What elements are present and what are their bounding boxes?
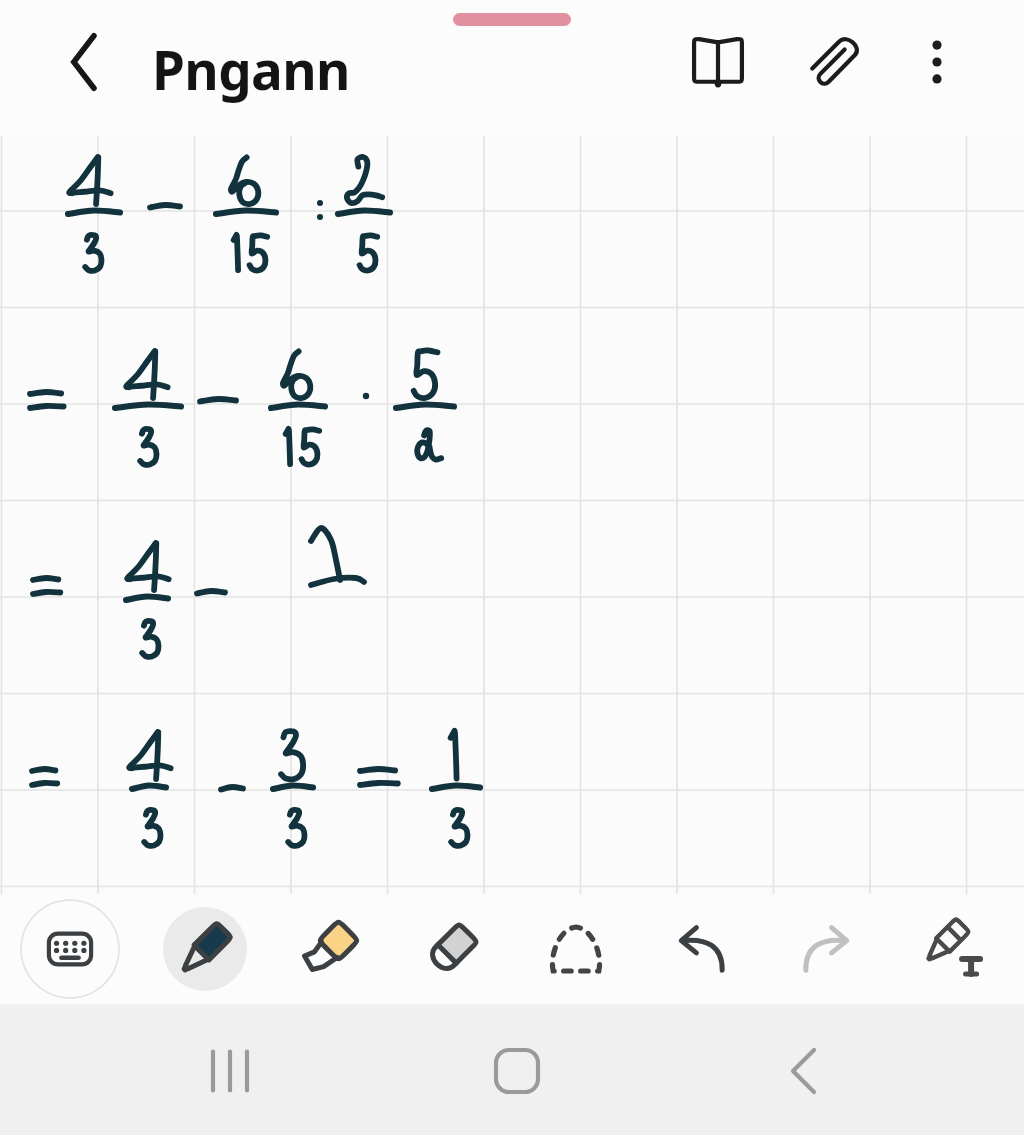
button[interactable]: Eraser	[410, 907, 494, 991]
button[interactable]: Undo	[660, 907, 744, 991]
button[interactable]: More options	[901, 26, 973, 98]
button[interactable]: Keyboard	[20, 899, 120, 999]
button[interactable]: Back	[49, 26, 121, 98]
button[interactable]: Recent apps	[186, 1027, 274, 1115]
button[interactable]: Pen	[163, 907, 247, 991]
button[interactable]: Back	[759, 1027, 847, 1115]
staticText: Pngann	[152, 33, 350, 105]
button[interactable]: Reading mode	[682, 26, 754, 98]
button[interactable]: Selection	[534, 907, 618, 991]
button[interactable]: Convert handwriting to text	[908, 907, 992, 991]
button[interactable]: Highlighter	[288, 907, 372, 991]
button[interactable]: Redo	[784, 907, 868, 991]
button[interactable]: Attach	[800, 26, 872, 98]
button[interactable]: Home	[473, 1027, 561, 1115]
